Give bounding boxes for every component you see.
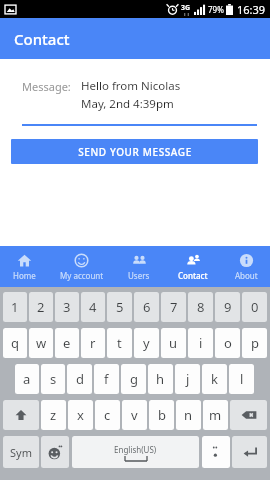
button[interactable]: c: [95, 400, 120, 430]
button[interactable]: 6: [134, 292, 159, 322]
button[interactable]: b: [149, 400, 174, 430]
button[interactable]: w: [29, 328, 53, 358]
staticText: 79%: [208, 4, 224, 15]
staticText: Contact: [178, 270, 208, 281]
button[interactable]: My account: [49, 246, 114, 287]
staticText: 3G: [181, 3, 191, 13]
button[interactable]: r: [81, 328, 105, 358]
staticText: g: [130, 370, 138, 388]
staticText: 1: [11, 298, 19, 316]
staticText: b: [158, 406, 166, 424]
button[interactable]: q: [3, 328, 27, 358]
staticText: 4: [89, 298, 97, 316]
staticText: p: [251, 334, 259, 352]
button[interactable]: z: [41, 400, 66, 430]
staticText: i: [199, 334, 203, 352]
staticText: t: [117, 334, 122, 352]
staticText: f: [104, 370, 109, 388]
staticText: 16:39: [237, 2, 266, 17]
staticText: c: [104, 406, 111, 424]
staticText: My account: [60, 270, 104, 281]
button[interactable]: k: [202, 364, 227, 394]
staticText: 0: [251, 298, 259, 316]
staticText: e: [63, 334, 71, 352]
staticText: r: [90, 334, 96, 352]
staticText: z: [50, 406, 57, 424]
button[interactable]: Contact: [164, 246, 222, 287]
button[interactable]: h: [148, 364, 173, 394]
staticText: m: [209, 406, 222, 424]
button[interactable]: 9: [215, 292, 240, 322]
staticText: s: [50, 370, 57, 388]
button[interactable]: t: [107, 328, 132, 358]
button[interactable]: u: [161, 328, 186, 358]
staticText: u: [169, 334, 178, 352]
button[interactable]: m: [203, 400, 228, 430]
staticText: SEND YOUR MESSAGE: [78, 145, 192, 159]
button[interactable]: d: [67, 364, 92, 394]
button[interactable]: Period: [202, 436, 230, 468]
button[interactable]: a: [15, 364, 39, 394]
staticText: d: [76, 370, 84, 388]
staticText: 6: [143, 298, 151, 316]
button[interactable]: p: [242, 328, 267, 358]
button[interactable]: 1: [3, 292, 27, 322]
staticText: v: [131, 406, 138, 424]
staticText: l: [240, 370, 244, 388]
button[interactable]: n: [176, 400, 201, 430]
button[interactable]: j: [175, 364, 200, 394]
staticText: k: [211, 370, 218, 388]
staticText: j: [186, 370, 190, 388]
button[interactable]: 3: [55, 292, 79, 322]
staticText: 7: [170, 298, 178, 316]
staticText: 3: [63, 298, 71, 316]
button[interactable]: 4: [81, 292, 105, 322]
button[interactable]: e: [55, 328, 79, 358]
button[interactable]: Users: [114, 246, 164, 287]
button[interactable]: Sym: [3, 436, 39, 468]
button[interactable]: 2: [29, 292, 53, 322]
staticText: May, 2nd 4:39pm: [81, 96, 174, 112]
button[interactable]: 5: [107, 292, 132, 322]
staticText: x: [77, 406, 84, 424]
staticText: Home: [13, 270, 36, 281]
button[interactable]: g: [121, 364, 146, 394]
staticText: n: [184, 406, 193, 424]
staticText: a: [23, 370, 31, 388]
staticText: Contact: [14, 29, 70, 49]
button[interactable]: 0: [242, 292, 267, 322]
button[interactable]: Space: [72, 436, 199, 468]
staticText: 2: [37, 298, 45, 316]
button[interactable]: Home: [0, 246, 49, 287]
button[interactable]: Shift: [3, 400, 39, 430]
button[interactable]: l: [229, 364, 254, 394]
staticText: 5: [116, 298, 124, 316]
button[interactable]: o: [215, 328, 240, 358]
staticText: Sym: [10, 445, 32, 460]
staticText: Users: [128, 270, 150, 281]
staticText: 9: [224, 298, 232, 316]
button[interactable]: s: [41, 364, 65, 394]
button[interactable]: Backspace: [230, 400, 267, 430]
staticText: 8: [197, 298, 205, 316]
staticText: English(US): [114, 444, 157, 455]
button[interactable]: About: [222, 246, 270, 287]
staticText: Message:: [22, 79, 71, 94]
button[interactable]: y: [134, 328, 159, 358]
button[interactable]: v: [122, 400, 147, 430]
staticText: Hello from Nicolas: [81, 78, 181, 94]
staticText: About: [235, 270, 258, 281]
button[interactable]: Enter: [232, 436, 267, 468]
button[interactable]: f: [94, 364, 119, 394]
button[interactable]: 8: [188, 292, 213, 322]
button[interactable]: Emoji: [41, 436, 69, 468]
button[interactable]: SEND YOUR MESSAGE: [11, 139, 258, 164]
staticText: q: [11, 334, 19, 352]
staticText: w: [36, 334, 47, 352]
staticText: y: [143, 334, 150, 352]
staticText: h: [156, 370, 165, 388]
button[interactable]: x: [68, 400, 93, 430]
button[interactable]: i: [188, 328, 213, 358]
button[interactable]: 7: [161, 292, 186, 322]
staticText: o: [224, 334, 232, 352]
